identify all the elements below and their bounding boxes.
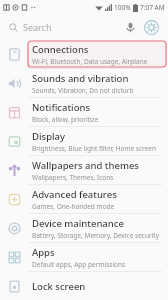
staticText: Default apps, App permissions — [32, 260, 126, 269]
button[interactable]: Advanced features — [0, 185, 168, 213]
staticText: 100% — [114, 3, 131, 12]
button[interactable]: Sounds and vibration — [0, 69, 168, 97]
staticText: Block, allow, prioritize — [32, 115, 99, 124]
button[interactable]: Notifications — [0, 98, 168, 126]
staticText: Wi-Fi, Bluetooth, Data usage, Airplane m… — [32, 57, 164, 66]
staticText: Lock screen — [32, 280, 86, 293]
button[interactable]: Device maintenance — [0, 214, 168, 242]
button[interactable]: Display — [0, 127, 168, 155]
staticText: Brightness, Blue light filter, Home scre… — [32, 144, 156, 153]
button[interactable]: Wallpapers and themes — [0, 156, 168, 184]
staticText: 7:07 AM — [140, 3, 165, 12]
button[interactable]: Lock screen — [0, 272, 168, 300]
staticText: Games, One-handed mode — [32, 202, 115, 211]
staticText: Sounds, Vibration, Do not disturb — [32, 86, 134, 95]
button[interactable]: Search settings — [140, 16, 162, 38]
staticText: Apps — [32, 246, 55, 259]
staticText: Wallpapers and themes — [32, 159, 139, 172]
staticText: Battery, Storage, Memory, Device securit… — [32, 231, 159, 240]
staticText: Device maintenance — [32, 217, 124, 230]
staticText: Sounds and vibration — [32, 72, 129, 85]
staticText: Search — [23, 21, 52, 33]
button[interactable]: Voice search — [120, 17, 140, 37]
staticText: Connections — [32, 43, 89, 56]
staticText: Wallpapers, Themes, Icons — [32, 173, 114, 182]
button[interactable]: Search — [9, 14, 120, 40]
staticText: Display — [32, 130, 66, 143]
button[interactable]: Apps — [0, 243, 168, 271]
staticText: Advanced features — [32, 188, 117, 201]
button[interactable]: Connections — [0, 40, 168, 68]
staticText: Notifications — [32, 101, 91, 114]
